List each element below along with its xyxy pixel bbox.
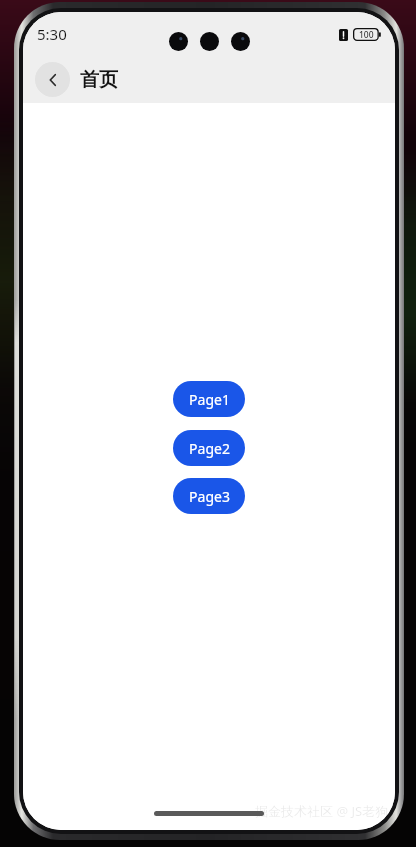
button[interactable]: Page1 xyxy=(173,381,245,417)
staticText: 5:30 xyxy=(37,24,67,44)
staticText: Page2 xyxy=(189,439,230,458)
staticText: 100 xyxy=(359,29,374,41)
staticText: 首页 xyxy=(80,68,118,92)
staticText: 掘金技术社区 @ JS老狗 xyxy=(255,802,389,820)
button[interactable]: Back xyxy=(35,62,70,97)
staticText: Page3 xyxy=(189,487,230,506)
staticText: Page1 xyxy=(189,390,230,409)
button[interactable]: Page3 xyxy=(173,478,245,514)
button[interactable]: Page2 xyxy=(173,430,245,466)
